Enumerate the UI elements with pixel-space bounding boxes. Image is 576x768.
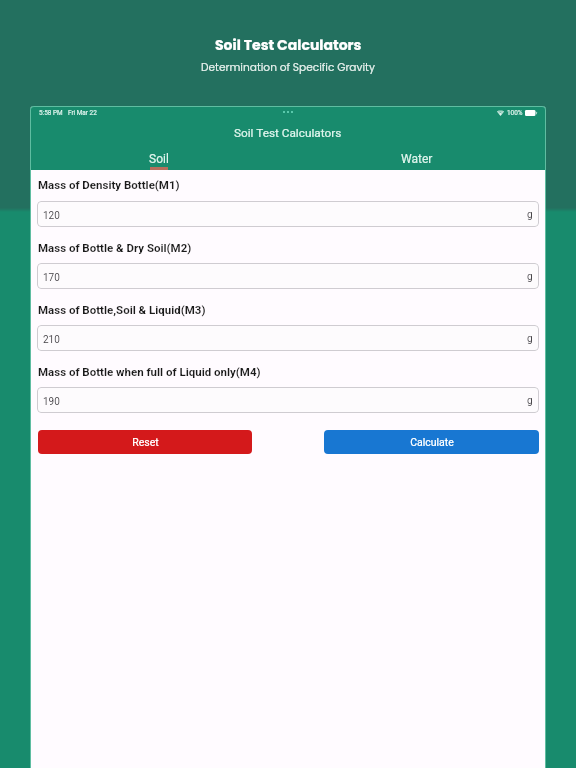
staticText: 100% <box>507 109 523 117</box>
other: Wi-Fi <box>497 110 504 116</box>
button[interactable]: Reset <box>38 430 252 454</box>
staticText: 5:58 PM <box>39 109 63 117</box>
button[interactable]: Water <box>288 144 546 170</box>
button[interactable]: Soil <box>30 144 288 170</box>
staticText: Fri Mar 22 <box>68 109 97 117</box>
button[interactable]: 190 <box>37 387 539 413</box>
staticText: g <box>527 395 533 407</box>
staticText: Soil Test Calculators <box>234 126 342 140</box>
staticText: Determination of Specific Gravity <box>201 60 375 75</box>
button[interactable]: 210 <box>37 325 539 351</box>
button[interactable]: 170 <box>37 263 539 289</box>
staticText: Mass of Bottle,Soil & Liquid(M3) <box>38 303 206 316</box>
staticText: 210 <box>43 334 60 346</box>
other: Battery <box>525 110 537 116</box>
button[interactable]: 120 <box>37 201 539 227</box>
staticText: Soil <box>149 152 169 166</box>
staticText: 170 <box>43 272 60 284</box>
staticText: Water <box>401 152 433 166</box>
staticText: g <box>527 271 533 283</box>
staticText: g <box>527 209 533 221</box>
staticText: Mass of Bottle when full of Liquid only(… <box>38 365 261 378</box>
staticText: Mass of Density Bottle(M1) <box>38 178 180 191</box>
staticText: Soil Test Calculators <box>215 35 362 55</box>
button[interactable]: Calculate <box>324 430 539 454</box>
staticText: g <box>527 333 533 345</box>
staticText: Reset <box>132 436 159 448</box>
staticText: 120 <box>43 210 60 222</box>
staticText: 190 <box>43 396 60 408</box>
staticText: Calculate <box>410 436 454 448</box>
staticText: Mass of Bottle & Dry Soil(M2) <box>38 241 192 254</box>
